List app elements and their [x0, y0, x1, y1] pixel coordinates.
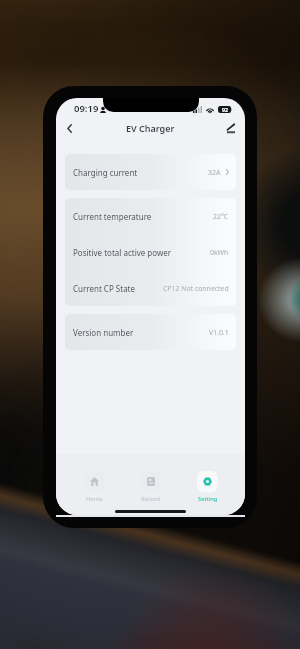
button[interactable]: Setting — [189, 471, 226, 503]
button[interactable]: Current CP State — [65, 270, 236, 306]
staticText: 09:19 — [74, 102, 99, 115]
button[interactable]: Back — [57, 117, 81, 139]
staticText: V1.0.1 — [209, 328, 229, 337]
staticText: Home — [86, 495, 103, 503]
staticText: 32A — [208, 168, 221, 177]
staticText: Setting — [198, 495, 218, 503]
staticText: Version number — [73, 327, 134, 338]
button[interactable]: Charging current — [65, 154, 236, 190]
staticText: EV Charger — [126, 122, 175, 134]
staticText: CP12 Not connected — [163, 284, 229, 293]
staticText: 22°C — [213, 212, 229, 221]
button[interactable]: Current temperature — [65, 198, 236, 234]
button[interactable]: Home — [76, 471, 113, 503]
button[interactable]: Record — [132, 471, 169, 503]
staticText: Record — [141, 495, 161, 503]
button[interactable]: Edit — [219, 117, 243, 139]
staticText: 0kWh — [210, 248, 229, 257]
staticText: 92 — [222, 106, 229, 113]
staticText: Positive total active power — [73, 247, 172, 258]
staticText: Current temperature — [73, 211, 152, 222]
button[interactable]: Version number — [65, 314, 236, 350]
staticText: Charging current — [73, 167, 138, 178]
staticText: Current CP State — [73, 283, 136, 294]
button[interactable]: Positive total active power — [65, 234, 236, 270]
